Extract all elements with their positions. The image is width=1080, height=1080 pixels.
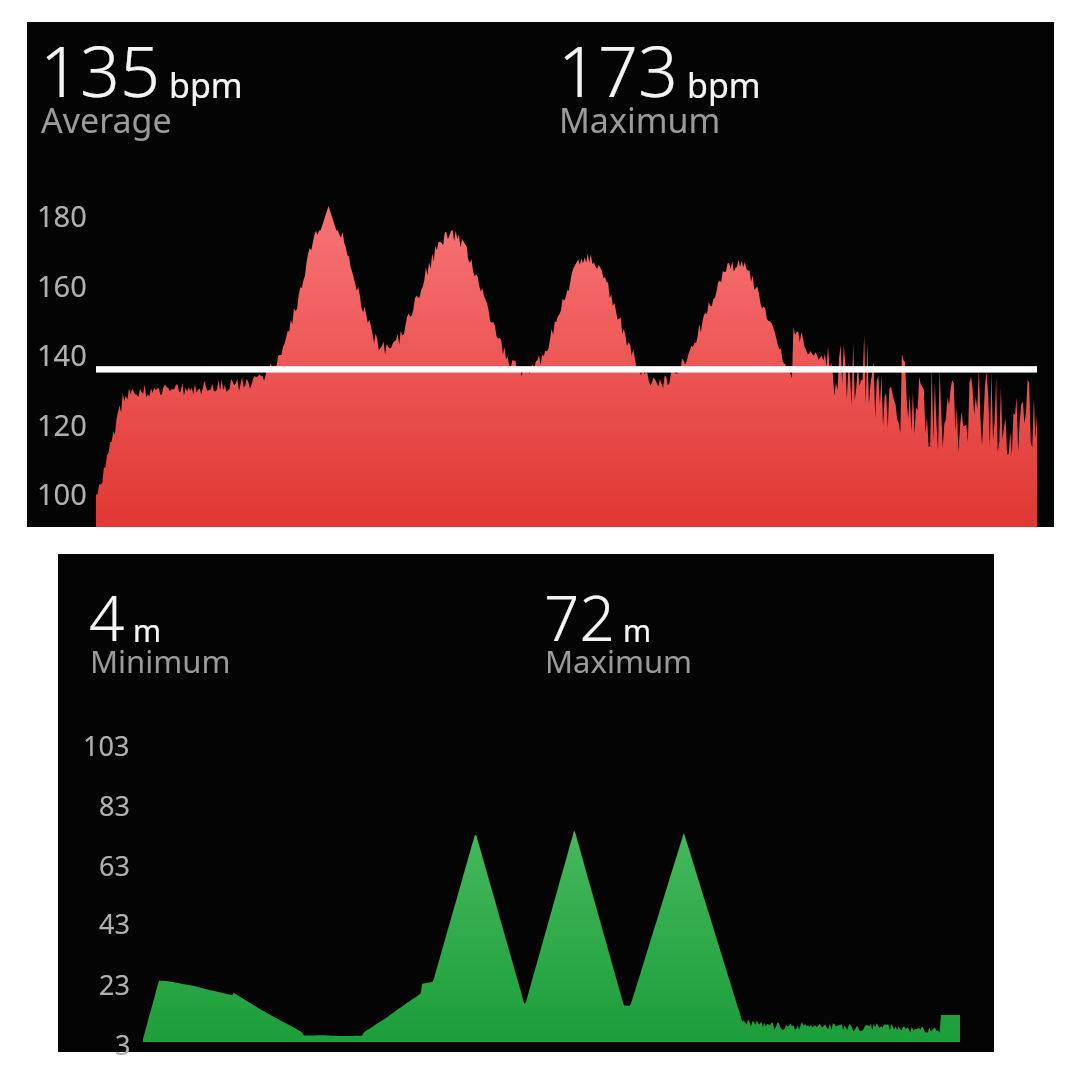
staticText: 120 <box>37 405 87 444</box>
staticText: 103 <box>83 727 130 764</box>
staticText: 23 <box>99 966 130 1003</box>
staticText: 83 <box>99 787 130 824</box>
staticText: 72 <box>544 575 615 659</box>
staticText: 100 <box>37 474 87 513</box>
button[interactable]: Elevation chart <box>58 554 994 1052</box>
staticText: m <box>133 610 162 651</box>
button[interactable]: 4 <box>89 575 162 659</box>
staticText: 140 <box>37 335 87 374</box>
button[interactable]: 135 <box>40 22 243 117</box>
staticText: 63 <box>99 847 130 884</box>
button[interactable]: Heart rate chart <box>27 22 1054 527</box>
staticText: 173 <box>558 22 678 117</box>
staticText: 180 <box>37 196 87 235</box>
staticText: Average <box>41 97 172 143</box>
staticText: Maximum <box>545 640 693 682</box>
staticText: Minimum <box>90 640 231 682</box>
button[interactable]: 72 <box>544 575 652 659</box>
staticText: bpm <box>169 62 243 108</box>
staticText: 135 <box>40 22 160 117</box>
staticText: Maximum <box>559 97 721 143</box>
staticText: 4 <box>89 575 125 659</box>
staticText: 43 <box>99 905 130 942</box>
staticText: 160 <box>37 266 87 305</box>
staticText: m <box>623 610 652 651</box>
staticText: 3 <box>115 1026 131 1063</box>
staticText: bpm <box>687 62 761 108</box>
button[interactable]: 173 <box>558 22 761 117</box>
